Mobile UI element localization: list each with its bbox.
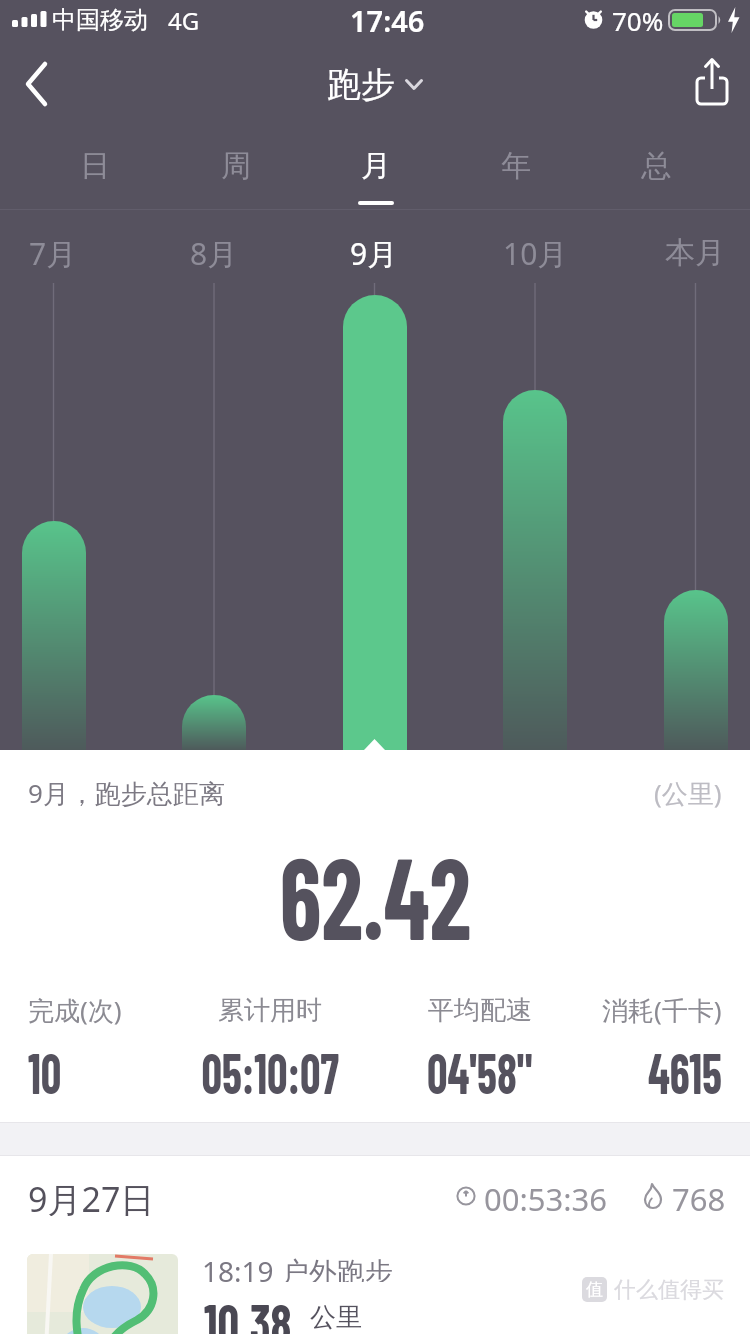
staticText: 10 <box>28 1036 61 1096</box>
staticText: 年 <box>501 147 531 185</box>
staticText: 768 <box>672 1178 726 1214</box>
staticText: 本月 <box>665 234 725 272</box>
button[interactable] <box>343 295 407 750</box>
staticText: 周 <box>221 147 251 185</box>
staticText: 4G <box>168 4 200 37</box>
staticText: 消耗(千卡) <box>602 992 722 1028</box>
button[interactable] <box>503 390 567 750</box>
staticText: 跑步 <box>327 63 395 106</box>
staticText: 平均配速 <box>428 994 532 1027</box>
button[interactable] <box>664 590 728 750</box>
staticText: 18:19 户外跑步 <box>202 1252 393 1282</box>
button[interactable]: 总 <box>586 122 726 210</box>
button[interactable] <box>0 1236 750 1334</box>
staticText: 62.42 <box>280 826 471 956</box>
staticText: 完成(次) <box>28 992 122 1028</box>
staticText: 00:53:36 <box>484 1178 608 1214</box>
button[interactable]: 周 <box>165 122 306 210</box>
button[interactable] <box>16 56 68 112</box>
staticText: 9月，跑步总距离 <box>28 775 225 811</box>
staticText: 公里 <box>310 1301 362 1334</box>
staticText: 10月 <box>503 233 568 273</box>
staticText: 10.38 <box>204 1288 291 1334</box>
staticText: 4615 <box>648 1036 722 1096</box>
staticText: 什么值得买 <box>614 1276 724 1302</box>
staticText: (公里) <box>654 775 722 811</box>
button[interactable]: 年 <box>446 122 586 210</box>
staticText: 中国移动 <box>52 5 148 35</box>
button[interactable]: 月 <box>306 122 446 210</box>
staticText: 月 <box>361 147 391 185</box>
staticText: 7月 <box>29 233 77 273</box>
staticText: 总 <box>641 147 671 185</box>
staticText: 70% <box>612 3 664 38</box>
button[interactable]: 日 <box>24 122 165 210</box>
button[interactable] <box>182 695 246 750</box>
staticText: 累计用时 <box>218 994 322 1027</box>
staticText: 8月 <box>190 233 238 273</box>
staticText: 日 <box>80 147 110 185</box>
staticText: 9月 <box>350 233 398 273</box>
staticText: 04'58" <box>427 1036 533 1096</box>
button[interactable] <box>22 521 86 750</box>
staticText: 9月27日 <box>28 1176 155 1216</box>
button[interactable] <box>0 1156 750 1236</box>
staticText: 17:46 <box>350 1 425 40</box>
staticText: 05:10:07 <box>201 1036 340 1096</box>
button[interactable]: 跑步 <box>280 56 470 112</box>
button[interactable] <box>684 54 740 112</box>
staticText: 值 <box>586 1279 603 1300</box>
